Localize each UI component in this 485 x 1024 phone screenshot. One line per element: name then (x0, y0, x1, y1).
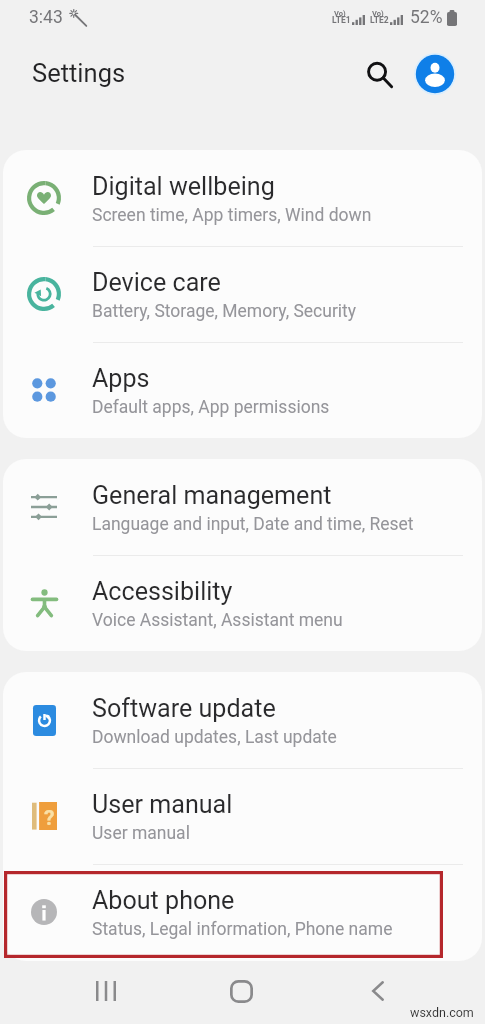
staticText: Screen time, App timers, Wind down (92, 205, 372, 226)
staticText: Vo) (372, 9, 384, 18)
staticText: Vo) (334, 9, 346, 18)
button[interactable]: About phone (3, 864, 482, 960)
staticText: Software update (92, 694, 276, 723)
staticText: ? (44, 806, 55, 831)
staticText: LTE1 (332, 15, 351, 25)
staticText: 52% (410, 7, 443, 28)
button[interactable]: Digital wellbeing (3, 150, 482, 246)
staticText: User manual (92, 790, 233, 819)
button[interactable]: Back (350, 969, 406, 1013)
staticText: Accessibility (92, 577, 233, 606)
button[interactable]: Accessibility (3, 555, 482, 651)
staticText: Settings (32, 58, 126, 88)
staticText: Device care (92, 268, 221, 297)
staticText: Default apps, App permissions (92, 397, 330, 418)
button[interactable]: Device care (3, 246, 482, 342)
staticText: Download updates, Last update (92, 727, 337, 748)
staticText: Language and input, Date and time, Reset (92, 514, 414, 535)
staticText: 3:43 (29, 7, 63, 28)
button[interactable]: Software update (3, 672, 482, 768)
button[interactable]: Search (355, 50, 403, 98)
button[interactable]: Apps (3, 342, 482, 438)
button[interactable]: Home (213, 969, 269, 1013)
button[interactable]: Recents (78, 969, 134, 1013)
staticText: Apps (92, 364, 150, 393)
staticText: LTE2 (370, 15, 389, 25)
staticText: Status, Legal information, Phone name (92, 919, 393, 940)
staticText: User manual (92, 823, 190, 844)
staticText: wsxdn.com (410, 1005, 474, 1020)
staticText: About phone (92, 886, 235, 915)
staticText: General management (92, 481, 332, 510)
staticText: Voice Assistant, Assistant menu (92, 610, 343, 631)
button[interactable]: General management (3, 459, 482, 555)
staticText: Battery, Storage, Memory, Security (92, 301, 357, 322)
button[interactable]: ? (3, 768, 482, 864)
staticText: Digital wellbeing (92, 172, 275, 201)
button[interactable]: Account (411, 50, 459, 98)
